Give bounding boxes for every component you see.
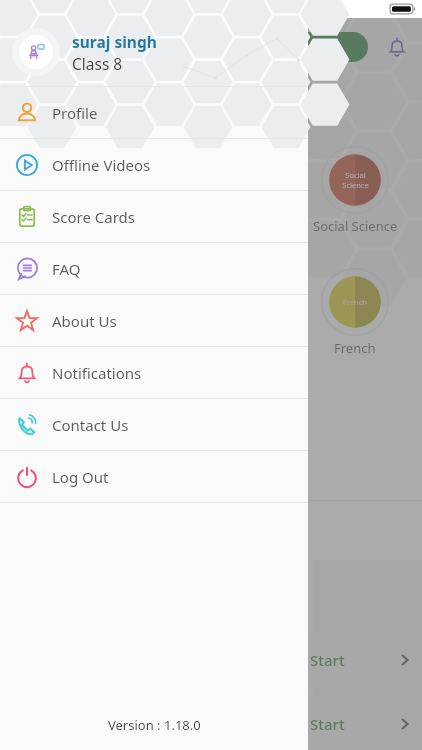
staticText: Class 8 <box>72 53 123 74</box>
button[interactable]: Offline Videos <box>0 139 308 190</box>
button[interactable] <box>308 0 422 750</box>
staticText: Class 8 <box>287 38 330 56</box>
button[interactable]: Class 8 <box>248 32 368 62</box>
staticText: Contact Us <box>52 415 129 435</box>
staticText: Social Science <box>313 217 398 235</box>
button[interactable]: Score Cards <box>0 191 308 242</box>
button[interactable]: suraj singh <box>0 18 308 86</box>
button[interactable]: French <box>300 268 410 357</box>
staticText: 4:46 PM <box>203 1 247 17</box>
staticText: Profile <box>52 103 98 123</box>
button[interactable]: Start <box>300 632 422 688</box>
staticText: suraj singh <box>72 31 157 52</box>
staticText: French <box>334 339 376 357</box>
staticText: Social Science <box>342 170 369 190</box>
button[interactable]: Social Science <box>300 146 410 235</box>
button[interactable]: FAQ <box>0 243 308 294</box>
staticText: Version : 1.18.0 <box>108 716 201 734</box>
staticText: Start <box>310 714 345 734</box>
button[interactable]: Contact Us <box>0 399 308 450</box>
staticText: About Us <box>52 311 117 331</box>
staticText: Log Out <box>52 467 109 487</box>
staticText: Offline Videos <box>52 155 151 175</box>
staticText: Start <box>310 650 345 670</box>
staticText: Notifications <box>52 363 142 383</box>
button[interactable]: Log Out <box>0 451 308 502</box>
button[interactable]: Start <box>300 696 422 750</box>
staticText: French <box>343 297 367 307</box>
button[interactable]: Notifications <box>382 32 412 62</box>
staticText: Score Cards <box>52 207 135 227</box>
staticText: FAQ <box>52 259 81 279</box>
button[interactable]: Profile <box>0 87 308 138</box>
button[interactable]: About Us <box>0 295 308 346</box>
staticText: Carrier <box>6 1 45 17</box>
button[interactable]: Notifications <box>0 347 308 398</box>
